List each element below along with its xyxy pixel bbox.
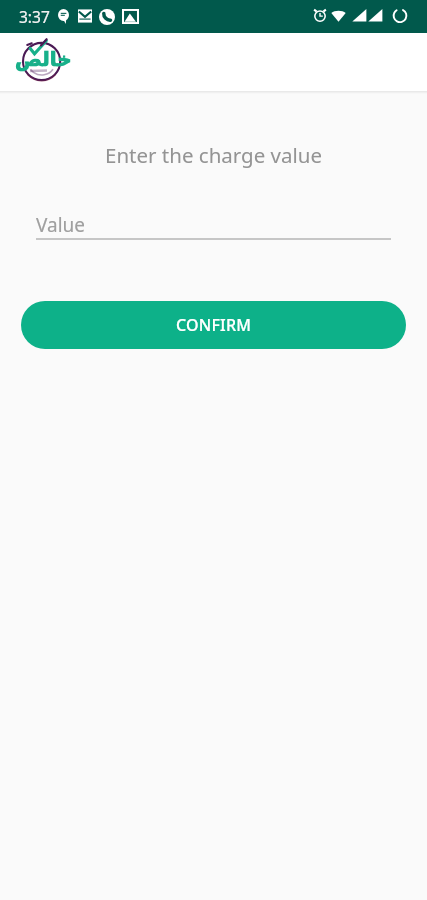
staticText: 3:37 (19, 6, 50, 27)
staticText: CONFIRM (176, 314, 252, 336)
staticText: خالص (15, 47, 72, 70)
button[interactable]: Khales app logo (14, 40, 70, 88)
button[interactable]: CONFIRM (21, 301, 406, 349)
staticText: Enter the charge value (0, 141, 427, 169)
staticText: Value (36, 212, 86, 238)
button[interactable]: Value (36, 205, 391, 240)
